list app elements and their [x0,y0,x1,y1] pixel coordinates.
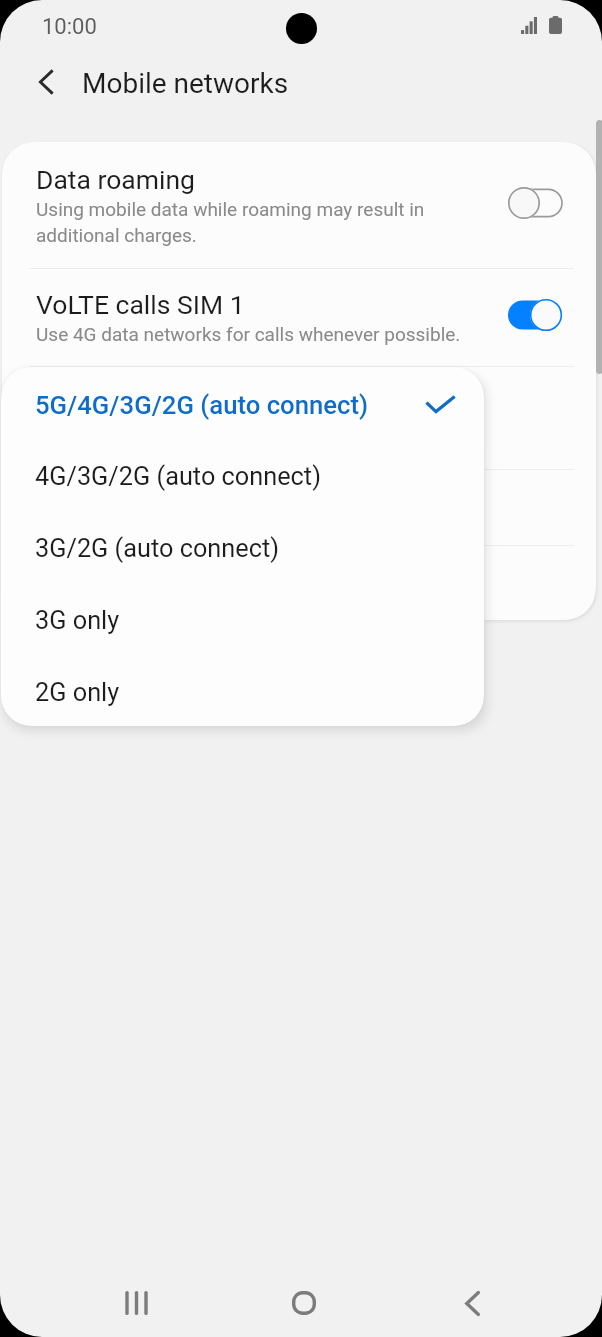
staticText: Using mobile data while roaming may resu… [36,198,425,246]
staticText: 3G/2G (auto connect) [35,534,280,564]
button[interactable]: Home [276,1275,332,1331]
button[interactable]: Navigate up [24,60,68,104]
button[interactable] [2,469,596,545]
button[interactable]: VoLTE calls SIM 1 [2,268,596,366]
button[interactable]: Off [506,186,564,220]
staticText: Use 4G data networks for calls whenever … [36,323,461,345]
button[interactable]: 3G only [1,583,484,655]
button[interactable]: On [506,298,564,332]
button[interactable]: 4G/3G/2G (auto connect) [1,439,484,511]
button[interactable]: Back [444,1275,500,1331]
button[interactable] [2,366,596,469]
staticText: 3G only [35,606,120,636]
staticText: Data roaming [36,164,195,195]
staticText: 5G/4G/3G/2G (auto connect) [35,390,369,420]
button[interactable]: Recent apps [108,1275,164,1331]
button[interactable]: 5G/4G/3G/2G (auto connect) [1,367,484,439]
staticText: 4G/3G/2G (auto connect) [35,462,321,492]
button[interactable]: Data roaming [2,142,596,268]
button[interactable]: 2G only [1,655,484,726]
button[interactable] [2,545,596,620]
staticText: Mobile networks [82,67,289,100]
staticText: 2G only [35,678,120,708]
staticText: VoLTE calls SIM 1 [36,289,245,320]
staticText: 10:00 [42,14,97,40]
button[interactable]: 3G/2G (auto connect) [1,511,484,583]
